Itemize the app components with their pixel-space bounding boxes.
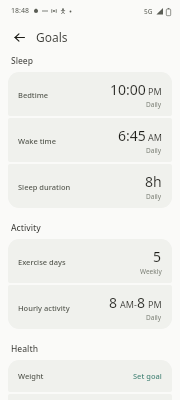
- button[interactable]: Bedtime: [8, 72, 172, 116]
- staticText: 8: [109, 293, 118, 312]
- staticText: Sleep duration: [18, 182, 71, 192]
- staticText: Exercise days: [18, 257, 66, 267]
- staticText: Weekly: [140, 267, 162, 276]
- button[interactable]: Back: [8, 26, 30, 48]
- staticText: Set goal: [133, 371, 162, 381]
- staticText: Hourly activity: [18, 303, 70, 313]
- staticText: Wake time: [18, 136, 56, 146]
- staticText: 8: [137, 293, 146, 312]
- staticText: PM: [148, 298, 162, 310]
- button[interactable]: Weight: [8, 360, 172, 392]
- staticText: 5: [153, 247, 162, 266]
- staticText: 5G: [144, 7, 153, 16]
- staticText: Activity: [11, 222, 41, 234]
- staticText: Daily: [146, 313, 162, 322]
- button[interactable]: Sleep duration: [8, 164, 172, 208]
- staticText: AM: [148, 131, 162, 143]
- staticText: 8h: [145, 172, 162, 191]
- button[interactable]: Hourly activity: [8, 285, 172, 329]
- staticText: AM-: [120, 298, 137, 310]
- staticText: Sleep: [11, 55, 33, 67]
- staticText: Bedtime: [18, 90, 49, 100]
- staticText: 6:45: [118, 126, 146, 145]
- staticText: Daily: [146, 192, 162, 201]
- staticText: Goals: [36, 29, 68, 45]
- button[interactable]: Exercise days: [8, 239, 172, 283]
- staticText: Daily: [146, 100, 162, 109]
- staticText: PM: [148, 85, 162, 97]
- staticText: Daily: [146, 146, 162, 155]
- staticText: 10:00: [110, 80, 146, 99]
- staticText: Weight: [18, 371, 44, 381]
- button[interactable]: Wake time: [8, 118, 172, 162]
- staticText: Health: [11, 343, 38, 355]
- staticText: 18:48: [11, 6, 29, 16]
